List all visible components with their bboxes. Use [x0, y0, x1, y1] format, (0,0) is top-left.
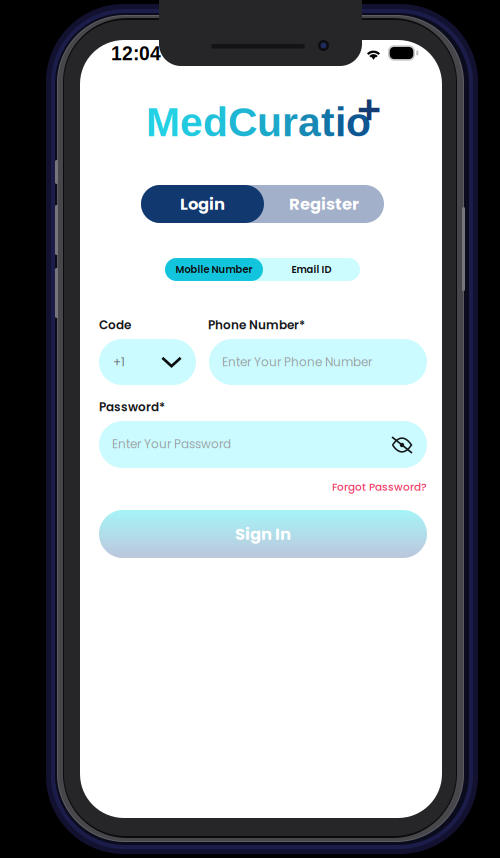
- staticText: i: [335, 99, 346, 145]
- staticText: M: [146, 99, 180, 145]
- button[interactable]: Email ID: [263, 258, 360, 281]
- staticText: Phone Number*: [208, 317, 305, 333]
- staticText: +: [357, 86, 381, 132]
- staticText: Code: [99, 317, 131, 333]
- staticText: Register: [289, 192, 359, 215]
- staticText: Email ID: [291, 263, 331, 276]
- staticText: Password*: [99, 399, 165, 415]
- staticText: d: [203, 99, 228, 145]
- button[interactable]: Forgot Password?: [332, 480, 427, 494]
- staticText: r: [282, 99, 298, 145]
- staticText: a: [298, 99, 321, 145]
- staticText: Enter Your Password: [112, 436, 231, 452]
- button[interactable]: Register: [264, 185, 384, 223]
- staticText: 12:04: [111, 43, 161, 64]
- staticText: Enter Your Phone Number: [222, 354, 372, 370]
- staticText: Forgot Password?: [332, 480, 427, 494]
- button[interactable]: Sign In: [99, 510, 427, 558]
- staticText: e: [180, 99, 203, 145]
- staticText: Sign In: [235, 522, 291, 545]
- staticText: u: [257, 99, 282, 145]
- button[interactable]: Mobile Number: [165, 258, 263, 281]
- button[interactable]: +1: [99, 339, 196, 385]
- staticText: +1: [113, 354, 125, 370]
- staticText: Mobile Number: [175, 263, 252, 276]
- staticText: C: [228, 99, 257, 145]
- button[interactable]: Show password: [391, 438, 412, 452]
- staticText: Login: [180, 192, 225, 215]
- staticText: o: [346, 99, 371, 145]
- staticText: t: [321, 99, 335, 145]
- button[interactable]: Login: [141, 185, 264, 223]
